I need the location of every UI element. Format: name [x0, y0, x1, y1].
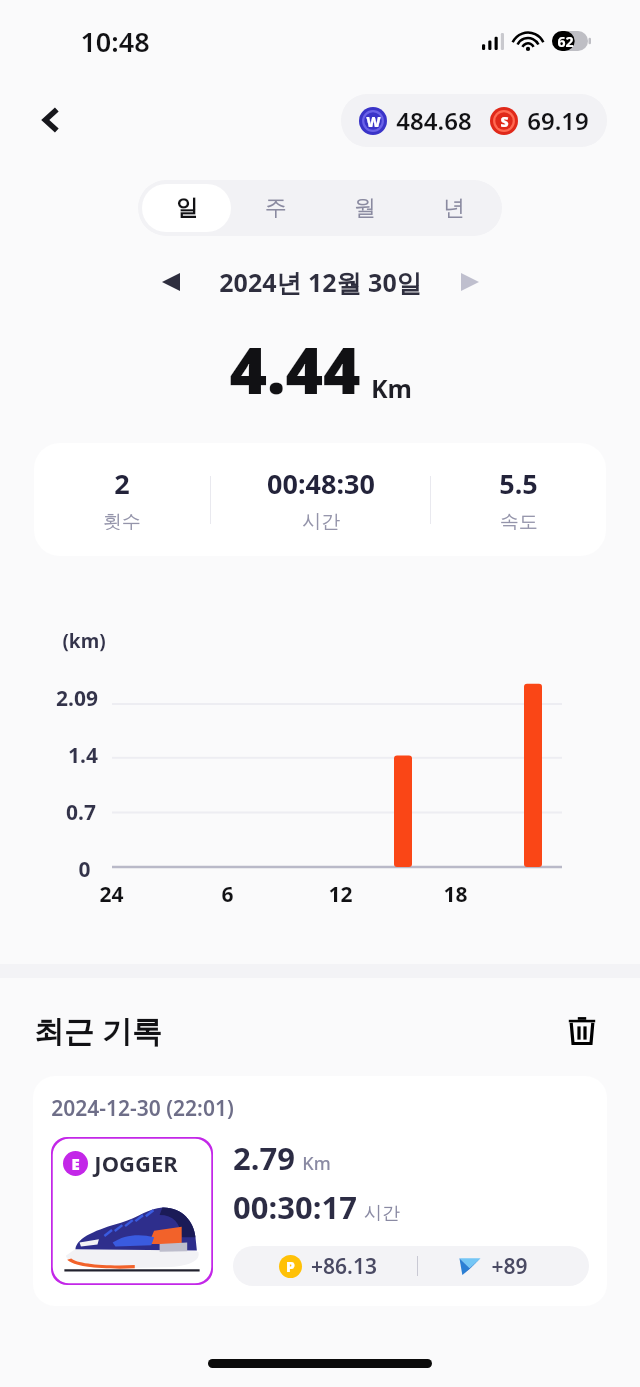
staticText: Km: [371, 371, 412, 405]
button[interactable]: 년: [409, 184, 498, 232]
staticText: 일: [176, 194, 198, 222]
button[interactable]: Delete records: [558, 1006, 606, 1054]
button[interactable]: 주: [231, 184, 320, 232]
staticText: 년: [443, 194, 465, 222]
staticText: 6: [221, 880, 234, 902]
staticText: 4.44: [229, 326, 361, 413]
button[interactable]: Previous day: [149, 260, 193, 304]
staticText: 횟수: [103, 510, 141, 534]
staticText: W: [366, 112, 381, 131]
staticText: 5.5: [499, 465, 538, 502]
button[interactable]: Back: [26, 94, 78, 146]
button[interactable]: 월: [320, 184, 409, 232]
button[interactable]: 2: [34, 443, 606, 556]
staticText: 2.79: [233, 1137, 295, 1179]
staticText: 시간: [364, 1202, 400, 1225]
staticText: +89: [491, 1252, 528, 1281]
staticText: 2024-12-30 (22:01): [51, 1094, 234, 1123]
button[interactable]: 일: [142, 184, 231, 232]
button[interactable]: 2024-12-30 (22:01): [33, 1076, 607, 1306]
staticText: 0: [78, 855, 91, 884]
button[interactable]: Next day: [448, 260, 492, 304]
staticText: E: [71, 1154, 80, 1174]
button[interactable]: W: [341, 94, 607, 147]
staticText: P: [286, 1257, 295, 1276]
staticText: JOGGER: [94, 1148, 178, 1178]
staticText: 최근 기록: [34, 1010, 162, 1051]
staticText: 00:30:17: [233, 1186, 357, 1228]
staticText: 10:48: [80, 23, 150, 60]
staticText: Km: [302, 1151, 331, 1176]
staticText: 속도: [500, 510, 538, 534]
staticText: 0.7: [66, 798, 96, 827]
staticText: 2.09: [56, 684, 98, 713]
staticText: 00:48:30: [267, 465, 375, 502]
staticText: 69.19: [527, 104, 589, 137]
staticText: (km): [62, 628, 106, 654]
staticText: 1.4: [68, 741, 98, 770]
staticText: 484.68: [396, 104, 472, 137]
staticText: 18: [443, 880, 468, 902]
staticText: 2024년 12월 30일: [219, 265, 422, 299]
staticText: S: [500, 112, 509, 131]
staticText: 24: [99, 880, 124, 902]
staticText: 월: [354, 194, 376, 222]
staticText: 주: [265, 194, 287, 222]
staticText: 시간: [302, 510, 340, 534]
staticText: +86.13: [311, 1252, 377, 1281]
button[interactable]: P: [233, 1246, 589, 1286]
staticText: 12: [328, 880, 353, 902]
staticText: 62: [557, 32, 574, 51]
staticText: 2: [114, 465, 130, 502]
